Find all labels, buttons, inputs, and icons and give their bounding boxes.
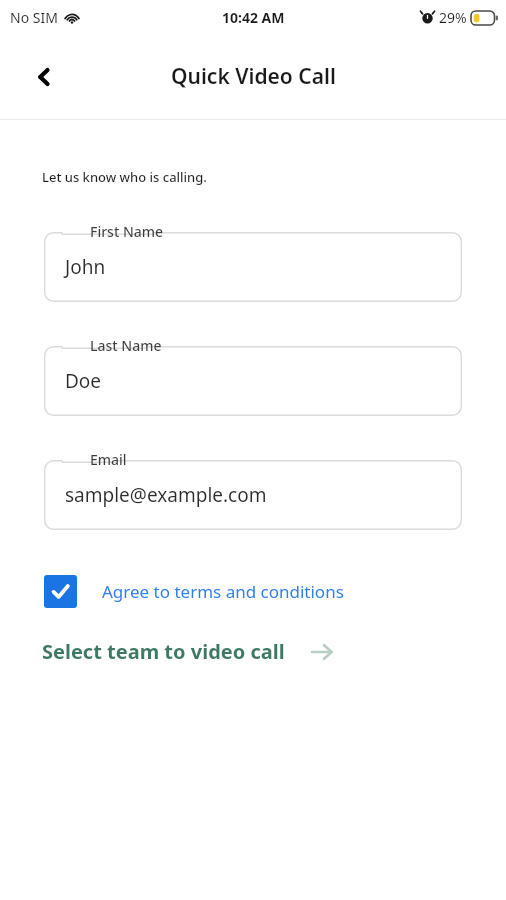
staticText: sample@example.com — [65, 482, 267, 508]
staticText: Last Name — [90, 336, 162, 355]
staticText: Email — [90, 450, 127, 469]
button[interactable]: Back — [22, 55, 66, 99]
staticText: No SIM — [10, 8, 58, 27]
button[interactable]: Select team to video call — [42, 638, 335, 665]
staticText: 29% — [439, 8, 467, 27]
button[interactable]: Agree to terms and conditions — [44, 575, 344, 608]
staticText: Select team to video call — [42, 638, 285, 665]
button[interactable] — [44, 232, 462, 302]
staticText: 10:42 AM — [222, 8, 285, 27]
staticText: John — [65, 254, 106, 280]
staticText: First Name — [90, 222, 164, 241]
staticText: Doe — [65, 368, 102, 394]
staticText: Agree to terms and conditions — [102, 580, 344, 603]
staticText: Let us know who is calling. — [42, 168, 207, 186]
button[interactable] — [44, 460, 462, 530]
staticText: Quick Video Call — [171, 62, 336, 91]
button[interactable] — [44, 346, 462, 416]
